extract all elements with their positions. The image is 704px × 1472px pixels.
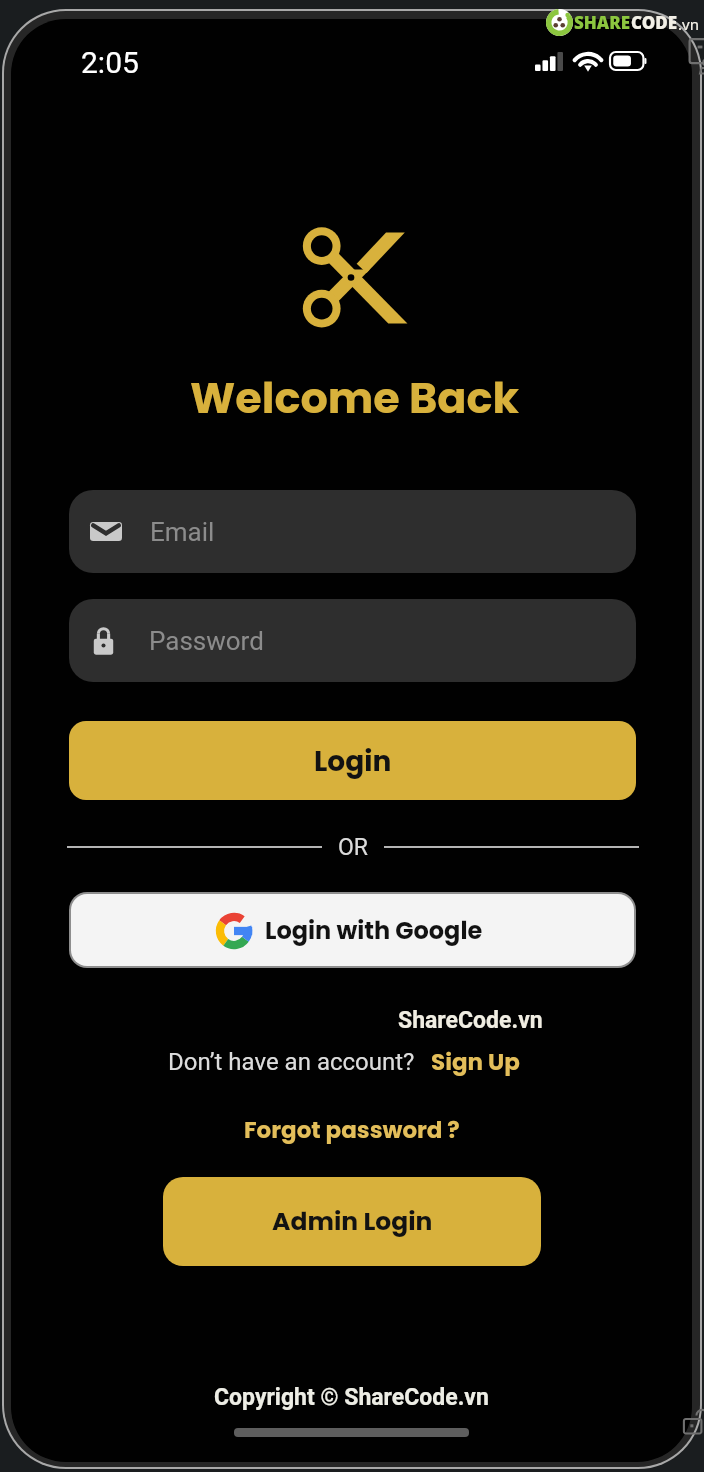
staticText: Forgot password ? [244, 1114, 460, 1146]
staticText: Login [314, 742, 392, 781]
staticText: 2:05 [81, 45, 139, 80]
button[interactable]: Forgot password ? [244, 1114, 460, 1146]
staticText: Welcome Back [190, 368, 520, 428]
staticText: .vn [678, 14, 699, 34]
staticText: SHARE [574, 11, 631, 34]
button[interactable]: Login [69, 721, 636, 800]
button[interactable]: Admin Login [163, 1177, 541, 1266]
staticText: Don’t have an account? [168, 1048, 415, 1076]
button[interactable]: Password [69, 599, 636, 682]
staticText: OR [338, 834, 368, 861]
staticText: Copyright © ShareCode.vn [214, 1384, 489, 1411]
staticText: Email [150, 517, 215, 547]
button[interactable]: Sign Up [431, 1046, 520, 1078]
staticText: CODE [631, 11, 678, 34]
staticText: Password [149, 626, 264, 656]
staticText: Sign Up [431, 1046, 520, 1078]
button[interactable]: Login with Google [71, 894, 634, 966]
staticText: Login with Google [265, 914, 483, 948]
staticText: Admin Login [272, 1204, 433, 1239]
button[interactable]: Email [69, 490, 636, 573]
staticText: ShareCode.vn [398, 1007, 543, 1034]
